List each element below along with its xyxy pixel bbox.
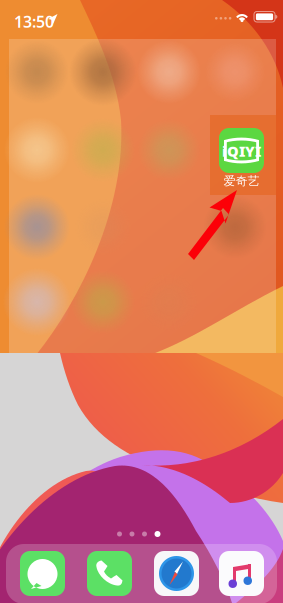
staticText: iQIYI [222, 141, 261, 161]
button[interactable]: Messages [20, 551, 65, 596]
staticText: 爱奇艺 [223, 174, 259, 188]
button[interactable]: Phone [87, 551, 132, 596]
button[interactable]: Music [219, 551, 264, 596]
button[interactable]: Safari [154, 551, 199, 596]
button[interactable]: 爱奇艺 [219, 128, 264, 188]
staticText: 13:50 [14, 11, 54, 32]
